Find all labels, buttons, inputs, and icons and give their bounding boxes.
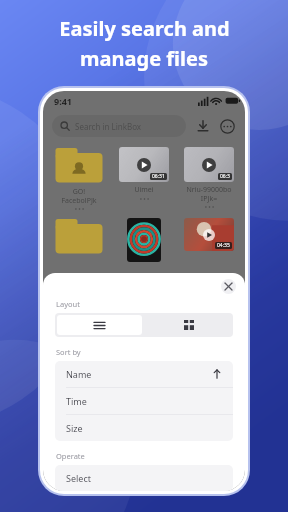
- staticText: 06:31: [152, 173, 165, 180]
- button[interactable]: List layout: [57, 315, 142, 335]
- button[interactable]: GO! FacebolPJk: [50, 147, 108, 211]
- staticText: Time: [66, 395, 87, 407]
- staticText: Sort by: [56, 347, 81, 357]
- button[interactable]: [115, 218, 173, 262]
- button[interactable]: Name: [55, 361, 233, 387]
- button[interactable]: 06:31: [115, 147, 173, 201]
- staticText: 9:41: [54, 95, 72, 107]
- staticText: Select: [66, 472, 91, 484]
- staticText: Name: [66, 368, 92, 380]
- button[interactable]: 04:35: [180, 218, 238, 251]
- button[interactable]: Grid layout: [144, 313, 233, 337]
- button[interactable]: Select: [55, 465, 233, 491]
- button[interactable]: Time: [55, 388, 233, 414]
- button[interactable]: [50, 218, 108, 255]
- staticText: Nriu-99000bo IPJk=: [186, 185, 232, 203]
- button[interactable]: Search in LinkBox: [52, 115, 186, 137]
- button[interactable]: Size: [55, 415, 233, 441]
- button[interactable]: 06:3: [180, 147, 238, 209]
- staticText: 06:3: [220, 173, 230, 180]
- staticText: 04:35: [217, 242, 230, 249]
- button[interactable]: Download: [194, 117, 212, 135]
- staticText: manage files: [80, 45, 208, 72]
- button[interactable]: Close: [221, 279, 236, 294]
- staticText: Size: [66, 422, 83, 434]
- staticText: Layout: [56, 299, 80, 309]
- staticText: Uimei: [134, 185, 154, 195]
- staticText: GO! FacebolPJk: [61, 187, 97, 205]
- staticText: Easily search and: [59, 15, 230, 42]
- button[interactable]: More options: [218, 117, 236, 135]
- staticText: Operate: [56, 451, 85, 461]
- staticText: Search in LinkBox: [75, 121, 142, 132]
